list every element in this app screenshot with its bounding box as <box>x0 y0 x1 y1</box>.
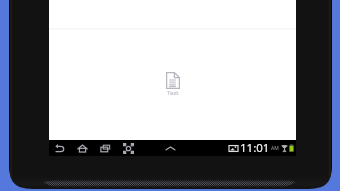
button[interactable]: Recents <box>99 140 111 156</box>
button[interactable]: Screenshot <box>122 140 134 156</box>
staticText: AM <box>271 145 279 152</box>
button[interactable]: Home <box>76 140 88 156</box>
button[interactable]: Text file <box>166 72 180 97</box>
staticText: 11:01 <box>240 140 270 156</box>
button[interactable]: Notifications <box>164 140 176 156</box>
button[interactable]: Back <box>53 140 65 156</box>
staticText: Text <box>167 89 179 97</box>
